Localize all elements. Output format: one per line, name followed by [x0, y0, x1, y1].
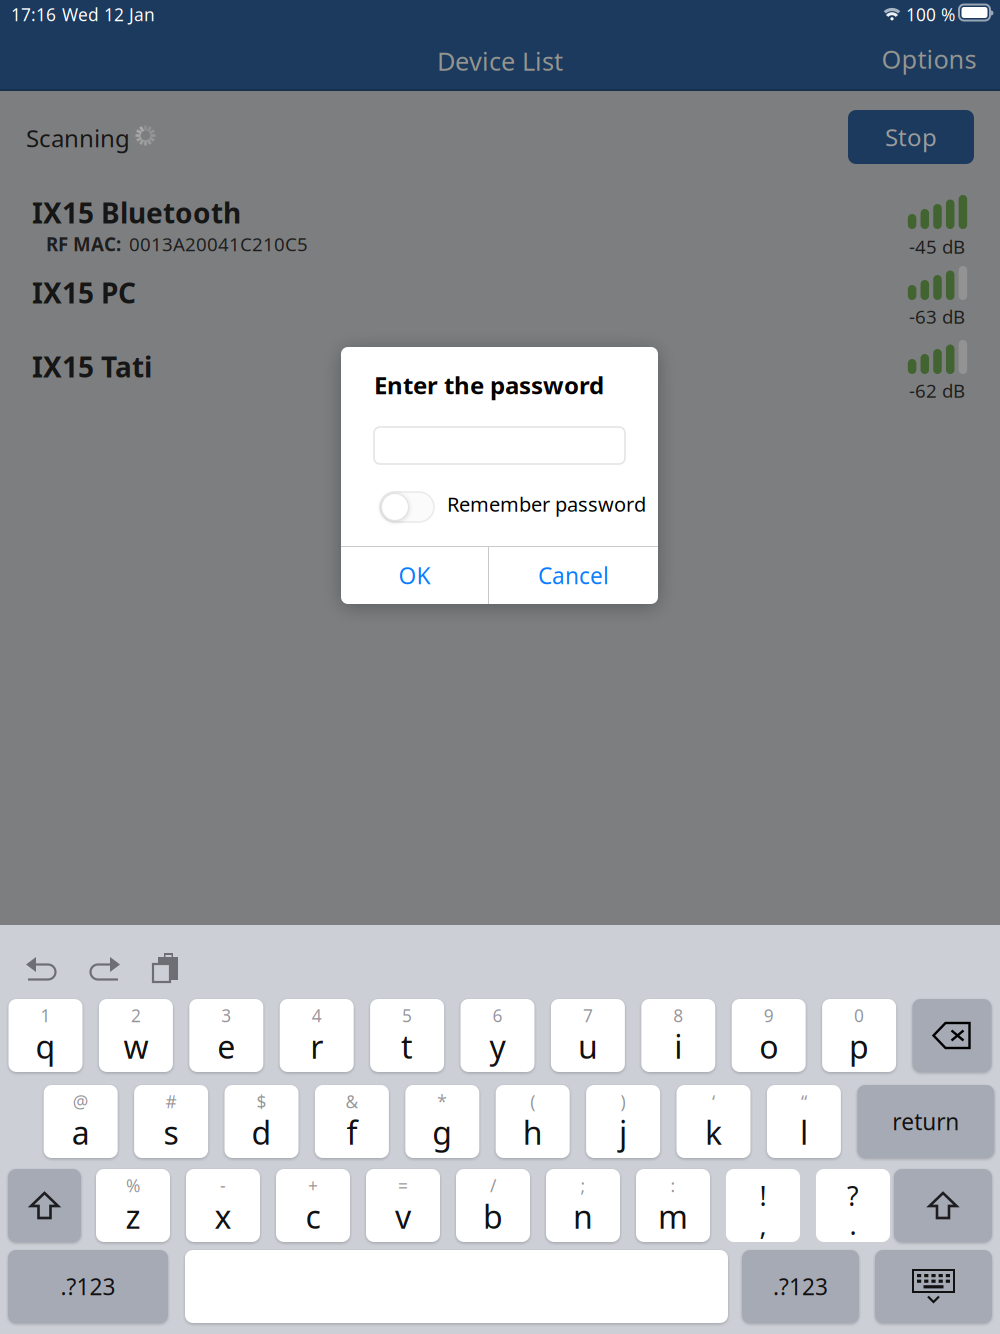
button[interactable]: IX15 Bluetooth [0, 194, 1000, 268]
button[interactable]: 7 [551, 999, 625, 1072]
staticText: return [892, 1106, 959, 1136]
button[interactable]: - [186, 1169, 260, 1242]
staticText: -63 dB [909, 304, 965, 329]
staticText: 100 % [906, 3, 955, 26]
button[interactable]: 3 [189, 999, 263, 1072]
staticText: % [126, 1174, 140, 1197]
staticText: y [489, 1025, 505, 1067]
button[interactable]: Shift [8, 1169, 81, 1242]
button[interactable]: .?123 [742, 1250, 859, 1323]
button[interactable]: Undo [25, 955, 57, 983]
staticText: . [849, 1207, 856, 1242]
staticText: Remember password [447, 491, 646, 517]
button[interactable]: 1 [8, 999, 82, 1072]
staticText: 4 [312, 1004, 322, 1027]
button[interactable]: Redo [89, 955, 121, 983]
staticText: : [670, 1174, 675, 1197]
button[interactable]: OK [341, 547, 488, 604]
button[interactable]: + [276, 1169, 350, 1242]
staticText: .?123 [773, 1271, 828, 1301]
staticText: Enter the password [374, 369, 604, 401]
staticText: Wed 12 Jan [62, 3, 155, 26]
button[interactable]: IX15 Tati [0, 342, 1000, 416]
staticText: OK [398, 560, 430, 590]
staticText: 6 [492, 1004, 502, 1027]
button[interactable]: Backspace [912, 999, 991, 1072]
button[interactable]: Shift [894, 1169, 992, 1242]
button[interactable]: Hide keyboard [875, 1250, 992, 1323]
staticText: Stop [885, 121, 937, 153]
button[interactable]: = [366, 1169, 440, 1242]
staticText: s [164, 1111, 179, 1153]
button[interactable]: ( [496, 1085, 570, 1158]
button[interactable]: Options [874, 34, 984, 84]
staticText: IX15 PC [32, 274, 136, 311]
button[interactable]: Cancel [489, 547, 658, 604]
staticText: q [35, 1025, 55, 1067]
button[interactable]: % [96, 1169, 170, 1242]
staticText: @ [73, 1090, 89, 1113]
button[interactable]: .?123 [8, 1250, 168, 1323]
button[interactable]: $ [224, 1085, 298, 1158]
button[interactable]: & [315, 1085, 389, 1158]
button[interactable]: 2 [99, 999, 173, 1072]
button[interactable]: return [857, 1085, 994, 1158]
staticText: h [523, 1111, 543, 1153]
button[interactable]: Paste [151, 951, 180, 984]
staticText: & [345, 1090, 358, 1113]
button[interactable]: # [134, 1085, 208, 1158]
staticText: e [217, 1025, 235, 1067]
staticText: f [346, 1111, 357, 1153]
staticText: r [310, 1025, 323, 1067]
button[interactable]: Stop [848, 110, 974, 164]
staticText: g [432, 1111, 452, 1153]
staticText: 1 [40, 1004, 50, 1027]
button[interactable]: : [636, 1169, 710, 1242]
button[interactable]: 5 [370, 999, 444, 1072]
staticText: “ [801, 1090, 807, 1113]
staticText: p [849, 1025, 869, 1067]
button[interactable]: ? [816, 1169, 890, 1242]
staticText: RF MAC: [46, 232, 121, 256]
staticText: 8 [673, 1004, 683, 1027]
staticText: j [619, 1111, 627, 1153]
staticText: ‘ [712, 1090, 715, 1113]
button[interactable]: / [456, 1169, 530, 1242]
button[interactable]: ) [586, 1085, 660, 1158]
staticText: Options [881, 42, 976, 76]
staticText: z [125, 1195, 140, 1237]
staticText: ! [759, 1178, 766, 1213]
staticText: c [305, 1195, 320, 1237]
staticText: ( [530, 1090, 535, 1113]
button[interactable]: “ [767, 1085, 841, 1158]
staticText: * [437, 1090, 447, 1113]
staticText: = [398, 1174, 408, 1197]
staticText: k [705, 1111, 722, 1153]
staticText: / [490, 1174, 496, 1197]
button[interactable]: IX15 PC [0, 268, 1000, 342]
staticText: i [674, 1025, 682, 1067]
button[interactable]: 9 [732, 999, 806, 1072]
button[interactable]: * [405, 1085, 479, 1158]
staticText: 9 [764, 1004, 774, 1027]
button[interactable]: ‘ [676, 1085, 750, 1158]
staticText: t [401, 1025, 413, 1067]
staticText: 3 [221, 1004, 231, 1027]
staticText: , [759, 1207, 766, 1242]
staticText: 2 [131, 1004, 141, 1027]
staticText: Scanning [26, 122, 130, 154]
button[interactable]: ; [546, 1169, 620, 1242]
staticText: IX15 Bluetooth [32, 194, 241, 231]
button[interactable]: 8 [641, 999, 715, 1072]
staticText: m [658, 1195, 688, 1237]
button[interactable]: 6 [460, 999, 534, 1072]
staticText: 17:16 [11, 3, 56, 26]
button[interactable]: 4 [280, 999, 354, 1072]
staticText: u [578, 1025, 598, 1067]
button[interactable]: 0 [822, 999, 896, 1072]
button[interactable]: ! [726, 1169, 800, 1242]
button[interactable]: @ [44, 1085, 118, 1158]
staticText: d [251, 1111, 271, 1153]
staticText: 7 [583, 1004, 593, 1027]
